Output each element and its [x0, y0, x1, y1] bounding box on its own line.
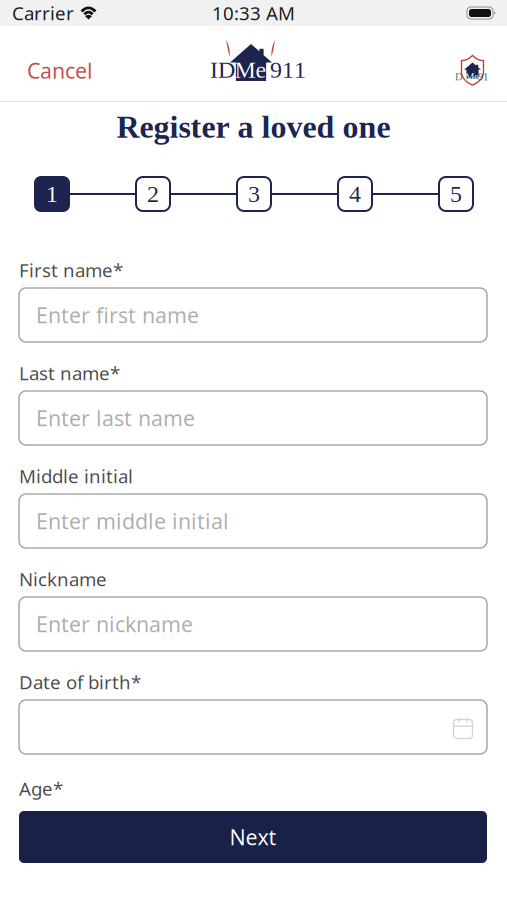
staticText: Carrier: [12, 1, 74, 25]
staticText: 5: [450, 181, 462, 207]
staticText: Me: [465, 71, 479, 82]
staticText: 4: [349, 181, 361, 207]
button[interactable]: [19, 700, 487, 754]
staticText: Age*: [19, 776, 63, 801]
button[interactable]: Account: [454, 26, 507, 101]
button[interactable]: Enter middle initial: [19, 494, 487, 548]
staticText: D: [455, 71, 463, 82]
staticText: Register a loved one: [116, 109, 390, 145]
staticText: Enter last name: [36, 404, 195, 432]
staticText: 2: [147, 181, 159, 207]
staticText: 911: [270, 56, 306, 83]
button[interactable]: Enter first name: [19, 288, 487, 342]
staticText: Middle initial: [19, 464, 133, 488]
button[interactable]: Enter nickname: [19, 597, 487, 651]
button[interactable]: Enter last name: [19, 391, 487, 445]
staticText: Date of birth*: [19, 670, 141, 694]
staticText: Me: [234, 56, 266, 83]
staticText: ID: [210, 56, 235, 83]
staticText: Next: [229, 823, 276, 851]
staticText: Enter middle initial: [36, 507, 229, 535]
staticText: 3: [248, 181, 260, 207]
staticText: First name*: [19, 258, 123, 282]
staticText: Enter nickname: [36, 610, 193, 638]
staticText: Enter first name: [36, 301, 199, 329]
staticText: Last name*: [19, 361, 120, 385]
staticText: 1: [46, 181, 58, 207]
staticText: 91: [478, 71, 488, 82]
staticText: Nickname: [19, 567, 107, 591]
button[interactable]: Next: [19, 811, 487, 863]
staticText: Cancel: [27, 56, 93, 85]
staticText: 10:33 AM: [212, 1, 295, 25]
button[interactable]: Cancel: [0, 26, 113, 101]
